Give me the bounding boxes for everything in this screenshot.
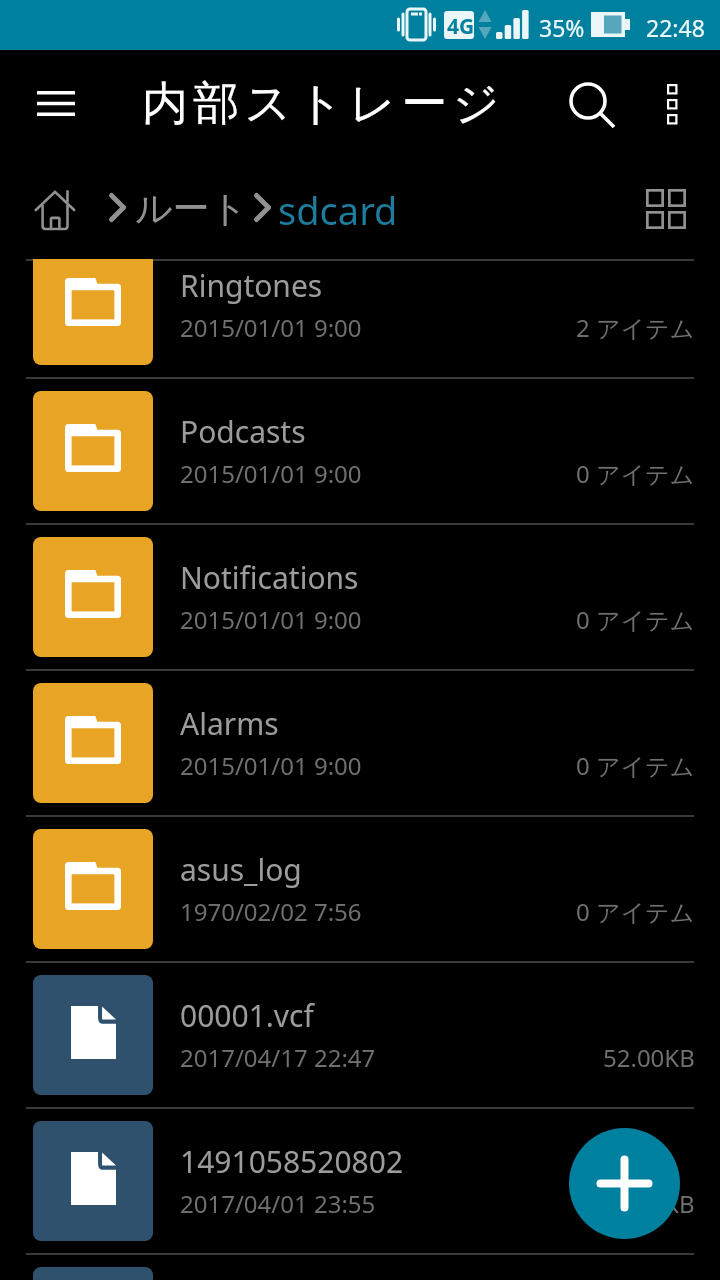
staticText: 0 アイテム: [576, 603, 695, 636]
staticText: 0 アイテム: [576, 895, 695, 928]
button[interactable]: asus_log: [0, 817, 720, 961]
button[interactable]: Notifications: [0, 525, 720, 669]
button[interactable]: Ringtones: [0, 259, 720, 377]
staticText: 2015/01/01 9:00: [180, 311, 362, 344]
staticText: 1491058520802: [180, 1141, 404, 1182]
staticText: 4G: [447, 12, 475, 41]
button[interactable]: IMG_0001.jpg: [0, 1255, 720, 1280]
staticText: 00001.vcf: [180, 995, 314, 1036]
button[interactable]: 1491058520802: [0, 1109, 720, 1253]
button[interactable]: ルート: [135, 185, 248, 232]
button[interactable]: Alarms: [0, 671, 720, 815]
button[interactable]: More options: [632, 62, 712, 142]
button[interactable]: sdcard: [278, 184, 398, 236]
staticText: 35%: [539, 12, 585, 43]
button[interactable]: Menu: [16, 63, 96, 143]
staticText: 2017/04/01 23:55: [180, 1187, 376, 1220]
staticText: 52.00KB: [603, 1041, 695, 1074]
staticText: 2017/04/17 22:47: [180, 1041, 376, 1074]
staticText: 2015/01/01 9:00: [180, 603, 362, 636]
button[interactable]: Podcasts: [0, 379, 720, 523]
staticText: 内部ストレージ: [142, 75, 505, 133]
button[interactable]: 00001.vcf: [0, 963, 720, 1107]
staticText: 22:48: [646, 12, 705, 43]
staticText: Ringtones: [180, 265, 323, 306]
staticText: 2015/01/01 9:00: [180, 457, 362, 490]
staticText: Alarms: [180, 703, 279, 744]
button[interactable]: Search: [548, 62, 628, 142]
staticText: 1970/02/02 7:56: [180, 895, 362, 928]
staticText: 0 アイテム: [576, 749, 695, 782]
staticText: 2015/01/01 9:00: [180, 749, 362, 782]
button[interactable]: Home: [24, 188, 88, 252]
staticText: asus_log: [180, 849, 302, 890]
staticText: 306.14KB: [589, 1187, 695, 1220]
staticText: 2 アイテム: [576, 311, 695, 344]
staticText: 0 アイテム: [576, 457, 695, 490]
button[interactable]: Add: [569, 1128, 680, 1239]
button[interactable]: Grid view: [634, 177, 698, 241]
staticText: Podcasts: [180, 411, 306, 452]
staticText: Notifications: [180, 557, 359, 598]
